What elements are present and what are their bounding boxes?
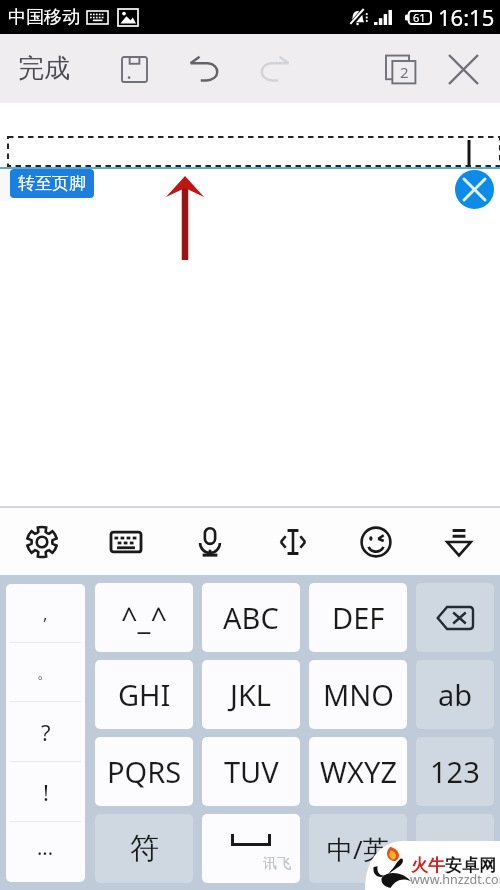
button[interactable]: PQRS <box>95 737 193 806</box>
staticText: PQRS <box>107 752 182 791</box>
staticText: TUV <box>224 752 279 791</box>
button[interactable]: ab <box>416 660 494 729</box>
button[interactable]: Backspace <box>416 583 494 652</box>
staticText: 中/英 <box>327 831 389 867</box>
button[interactable]: Save <box>107 42 161 96</box>
staticText: ... <box>37 834 54 861</box>
button[interactable]: Pages <box>374 42 428 96</box>
staticText: 讯飞 <box>263 855 291 873</box>
staticText: 61 <box>413 10 426 25</box>
button[interactable]: WXYZ <box>309 737 407 806</box>
button[interactable]: Keyboard layout <box>84 508 168 575</box>
button[interactable]: Close <box>436 42 490 96</box>
button[interactable]: MNO <box>309 660 407 729</box>
staticText: 123 <box>430 752 480 791</box>
staticText: ^_^ <box>121 598 168 637</box>
staticText: 完成 <box>18 52 70 85</box>
button[interactable]: Settings <box>0 508 84 575</box>
button[interactable]: Enter <box>416 814 494 883</box>
button[interactable]: ? <box>6 702 85 762</box>
staticText: ! <box>43 777 49 807</box>
staticText: 。 <box>37 662 54 683</box>
staticText: GHI <box>118 675 171 714</box>
button[interactable]: Voice input <box>168 508 251 575</box>
button[interactable]: ABC <box>202 583 300 652</box>
staticText: 安卓网 <box>445 855 496 876</box>
button[interactable]: ^_^ <box>95 583 193 652</box>
button[interactable]: 中/英 <box>309 814 407 883</box>
staticText: ? <box>41 717 51 747</box>
button[interactable]: Emoji <box>334 508 417 575</box>
staticText: www.hnzzdt.com <box>410 871 500 888</box>
button[interactable]: Redo <box>248 42 302 96</box>
button[interactable]: 完成 <box>8 42 80 95</box>
staticText: , <box>43 602 48 625</box>
staticText: 中国移动 <box>8 6 80 29</box>
staticText: WXYZ <box>320 752 397 791</box>
button[interactable]: DEF <box>309 583 407 652</box>
button[interactable]: Close <box>455 170 494 209</box>
staticText: DEF <box>332 598 385 637</box>
staticText: 转至页脚 <box>18 173 86 194</box>
button[interactable]: Cursor <box>251 508 334 575</box>
staticText: ABC <box>223 598 279 637</box>
button[interactable]: 123 <box>416 737 494 806</box>
staticText: 火牛 <box>411 855 445 876</box>
button[interactable]: 转至页脚 <box>10 169 94 198</box>
button[interactable]: ... <box>6 822 85 882</box>
button[interactable]: 。 <box>6 643 85 702</box>
button[interactable]: JKL <box>202 660 300 729</box>
button[interactable]: Hide keyboard <box>417 508 500 575</box>
button[interactable]: GHI <box>95 660 193 729</box>
staticText: 符 <box>130 830 159 867</box>
button[interactable]: , <box>6 584 85 643</box>
button[interactable]: 符 <box>95 814 193 883</box>
button[interactable]: TUV <box>202 737 300 806</box>
staticText: JKL <box>230 675 272 714</box>
staticText: 2 <box>400 62 409 82</box>
staticText: 16:15 <box>438 2 495 32</box>
staticText: MNO <box>323 675 394 714</box>
staticText: ab <box>438 675 473 714</box>
button[interactable]: Undo <box>177 42 231 96</box>
button[interactable]: ! <box>6 762 85 822</box>
button[interactable]: Space <box>202 814 300 883</box>
